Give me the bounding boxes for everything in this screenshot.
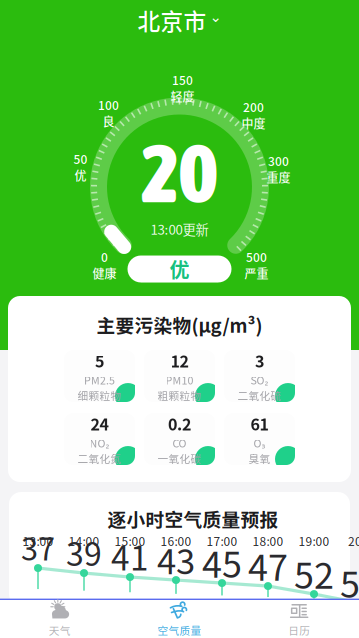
staticText: 中度 bbox=[241, 114, 265, 132]
staticText: 14:00 bbox=[68, 532, 99, 549]
button[interactable]: 24 bbox=[64, 413, 135, 465]
staticText: O₃ bbox=[253, 435, 265, 451]
staticText: 47 bbox=[248, 539, 288, 591]
staticText: 二氧化硫 bbox=[237, 388, 281, 403]
staticText: 500 bbox=[246, 248, 267, 265]
staticText: 主要污染物(μg/m³) bbox=[96, 311, 262, 338]
staticText: CO bbox=[172, 435, 186, 451]
staticText: PM10 bbox=[165, 372, 193, 388]
staticText: 健康 bbox=[92, 264, 116, 282]
button[interactable]: 12 bbox=[144, 350, 215, 402]
staticText: 24 bbox=[90, 412, 108, 435]
staticText: 45 bbox=[202, 536, 242, 588]
button[interactable]: 61 bbox=[224, 413, 295, 465]
staticText: 18:00 bbox=[252, 532, 283, 549]
staticText: 空气质量 bbox=[157, 622, 201, 638]
button[interactable]: 0.2 bbox=[144, 413, 215, 465]
button[interactable]: 5 bbox=[64, 350, 135, 402]
staticText: 50 bbox=[73, 150, 87, 167]
staticText: PM2.5 bbox=[84, 372, 115, 388]
staticText: 5 bbox=[95, 349, 104, 372]
staticText: 37 bbox=[21, 525, 55, 569]
staticText: 39 bbox=[66, 529, 102, 575]
staticText: 16:00 bbox=[160, 532, 191, 549]
button[interactable]: 北京市 bbox=[137, 0, 221, 40]
button[interactable]: 日历 bbox=[239, 600, 359, 638]
staticText: 17:00 bbox=[206, 532, 237, 549]
staticText: 52 bbox=[294, 547, 334, 599]
button[interactable]: 天气 bbox=[0, 600, 120, 638]
staticText: 19:00 bbox=[298, 532, 329, 549]
staticText: 43 bbox=[157, 534, 195, 584]
staticText: 12 bbox=[170, 349, 188, 372]
staticText: 天气 bbox=[49, 622, 71, 638]
staticText: 58 bbox=[340, 556, 359, 608]
staticText: 逐小时空气质量预报 bbox=[107, 505, 278, 532]
staticText: 13:00更新 bbox=[150, 219, 208, 238]
staticText: 200 bbox=[243, 98, 264, 115]
staticText: NO₂ bbox=[89, 435, 109, 451]
staticText: SO₂ bbox=[250, 372, 268, 388]
staticText: 15:00 bbox=[114, 532, 145, 549]
staticText: 臭氧 bbox=[248, 451, 270, 466]
button[interactable]: 3 bbox=[224, 350, 295, 402]
staticText: 日历 bbox=[288, 622, 310, 638]
staticText: 一氧化碳 bbox=[157, 451, 201, 466]
staticText: 重度 bbox=[266, 168, 290, 186]
staticText: 150 bbox=[172, 71, 193, 88]
staticText: 0.2 bbox=[168, 412, 191, 435]
button[interactable]: 优 bbox=[127, 255, 231, 282]
staticText: 北京市 bbox=[137, 4, 206, 36]
staticText: 严重 bbox=[244, 264, 268, 282]
staticText: 41 bbox=[111, 532, 149, 580]
staticText: 二氧化氮 bbox=[77, 451, 121, 466]
staticText: 300 bbox=[268, 152, 289, 169]
staticText: 61 bbox=[250, 412, 268, 435]
staticText: 细颗粒物 bbox=[77, 388, 121, 403]
staticText: 轻度 bbox=[170, 87, 194, 105]
staticText: 3 bbox=[255, 349, 264, 372]
staticText: 良 bbox=[102, 112, 114, 130]
staticText: 20 bbox=[141, 127, 217, 219]
staticText: 20:0 bbox=[348, 532, 359, 549]
staticText: 0 bbox=[101, 248, 108, 265]
staticText: 优 bbox=[169, 254, 189, 283]
staticText: 粗颗粒物 bbox=[157, 388, 201, 403]
staticText: ⌄ bbox=[209, 8, 221, 26]
staticText: 13:00 bbox=[22, 532, 53, 549]
staticText: 优 bbox=[74, 166, 86, 184]
button[interactable]: 空气质量 bbox=[120, 600, 239, 638]
staticText: 100 bbox=[98, 96, 119, 113]
